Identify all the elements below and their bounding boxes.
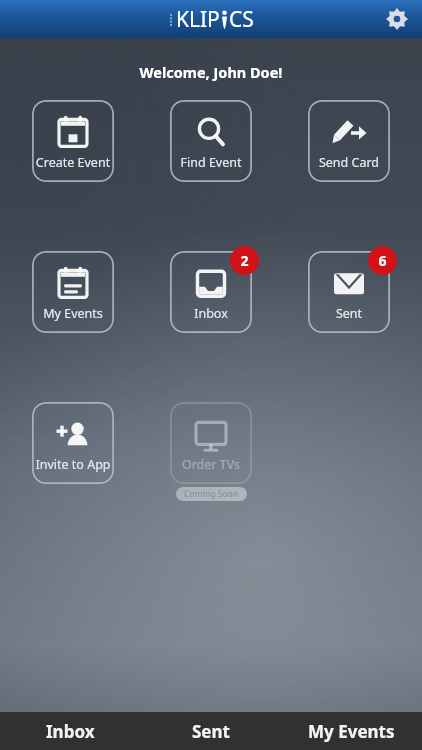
staticText: CS bbox=[229, 5, 254, 34]
button[interactable]: Settings bbox=[380, 2, 414, 36]
staticText: Sent bbox=[308, 305, 390, 322]
staticText: Sent bbox=[192, 720, 230, 743]
button[interactable]: Invite to App bbox=[32, 402, 114, 484]
staticText: Find Event bbox=[170, 154, 252, 171]
staticText: Inbox bbox=[46, 720, 95, 743]
staticText: 2 bbox=[240, 251, 249, 270]
staticText: My Events bbox=[32, 305, 114, 322]
staticText: Coming Soon bbox=[184, 488, 239, 500]
staticText: Inbox bbox=[170, 305, 252, 322]
button[interactable]: Send Card bbox=[308, 100, 390, 182]
button[interactable]: Inbox bbox=[170, 251, 252, 333]
staticText: Welcome, John Doe! bbox=[0, 62, 422, 82]
button[interactable]: Sent bbox=[308, 251, 390, 333]
staticText: 6 bbox=[378, 251, 387, 270]
staticText: My Events bbox=[308, 720, 395, 743]
staticText: Create Event bbox=[32, 154, 114, 171]
button[interactable]: Find Event bbox=[170, 100, 252, 182]
button[interactable]: Inbox bbox=[0, 712, 140, 750]
staticText: KLIP bbox=[176, 5, 220, 34]
button[interactable]: My Events bbox=[281, 712, 422, 750]
staticText: Send Card bbox=[308, 154, 390, 171]
button[interactable]: Sent bbox=[140, 712, 281, 750]
staticText: Order TVs bbox=[170, 456, 252, 473]
staticText: Invite to App bbox=[32, 456, 114, 473]
button[interactable]: My Events bbox=[32, 251, 114, 333]
button[interactable]: Create Event bbox=[32, 100, 114, 182]
button: Order TVs bbox=[170, 402, 252, 484]
